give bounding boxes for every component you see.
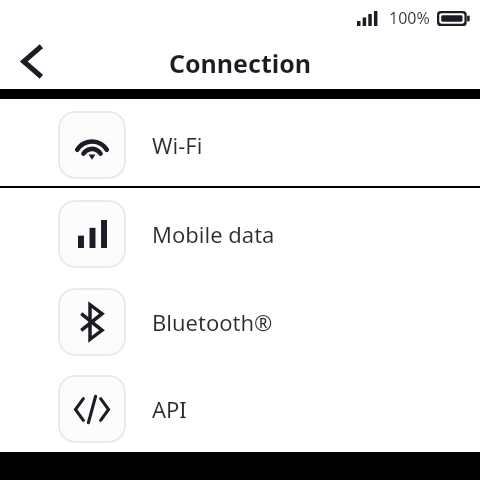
staticText: API	[152, 394, 187, 424]
staticText: Connection	[0, 46, 480, 80]
button[interactable]: API	[0, 366, 480, 452]
staticText: Mobile data	[152, 219, 275, 249]
button[interactable]: Mobile data	[0, 191, 480, 277]
staticText: 100%	[389, 7, 430, 29]
button[interactable]: Back	[7, 37, 55, 85]
staticText: Bluetooth®	[152, 307, 273, 337]
button[interactable]: Wi-Fi	[0, 102, 480, 188]
button[interactable]: Bluetooth®	[0, 279, 480, 365]
staticText: Wi-Fi	[152, 130, 203, 160]
